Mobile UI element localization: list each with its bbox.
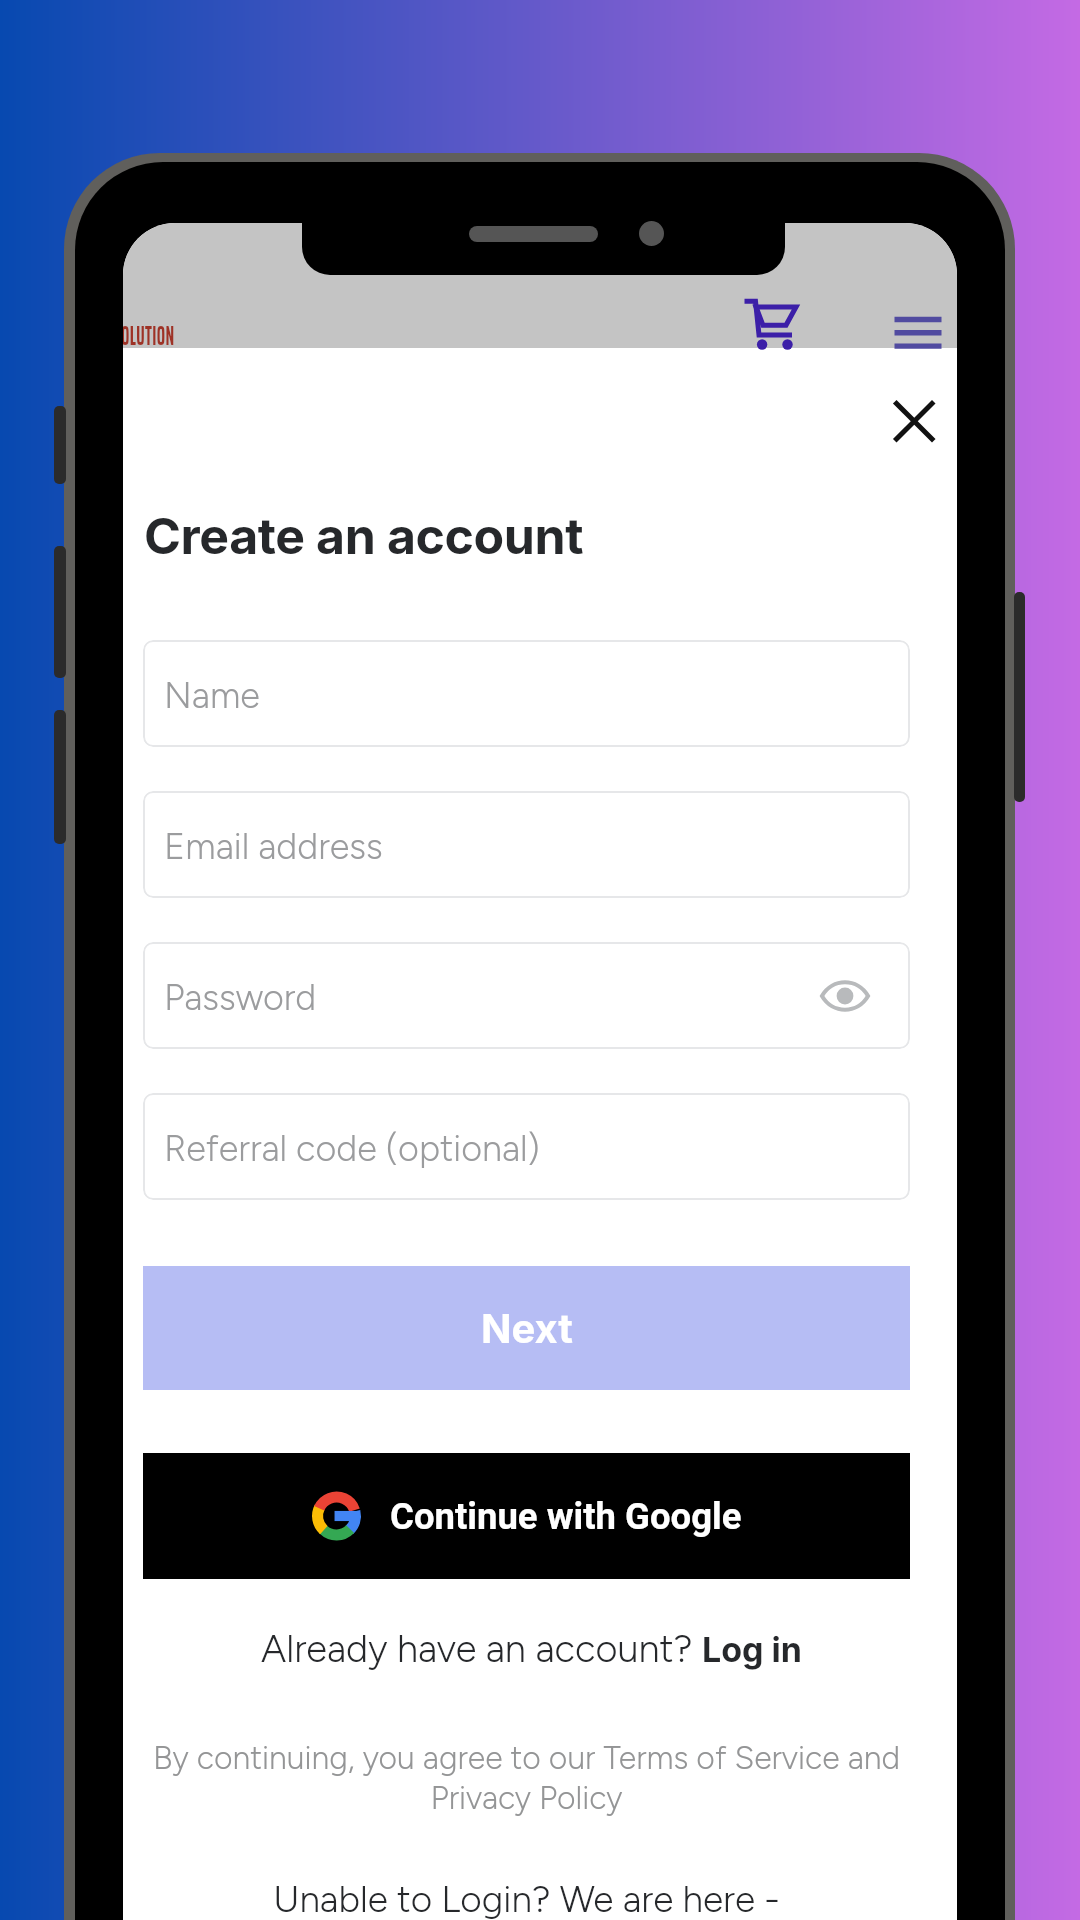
button[interactable]: Menu [893, 312, 943, 353]
button[interactable]: Referral code (optional) [143, 1093, 910, 1200]
staticText: Next [481, 1304, 573, 1352]
button[interactable]: Already have an account? Log in [261, 1626, 802, 1672]
button[interactable]: Password [143, 942, 910, 1049]
staticText: OLUTION [123, 315, 175, 356]
staticText: Name [164, 674, 260, 717]
button[interactable]: Email address [143, 791, 910, 898]
staticText: Email address [164, 825, 383, 868]
button[interactable]: Cart [742, 294, 804, 356]
staticText: Create an account [144, 506, 584, 566]
button[interactable]: Show password [821, 977, 869, 1015]
staticText: Password [164, 976, 317, 1019]
button[interactable]: Close [880, 387, 948, 455]
staticText: Unable to Login? We are here - [143, 1877, 910, 1920]
button[interactable]: Next [143, 1266, 910, 1390]
staticText: Continue with Google [390, 1495, 742, 1538]
button[interactable]: Name [143, 640, 910, 747]
staticText: Referral code (optional) [164, 1127, 540, 1170]
staticText: By continuing, you agree to our Terms of… [143, 1739, 910, 1817]
button[interactable]: Continue with Google [143, 1453, 910, 1579]
